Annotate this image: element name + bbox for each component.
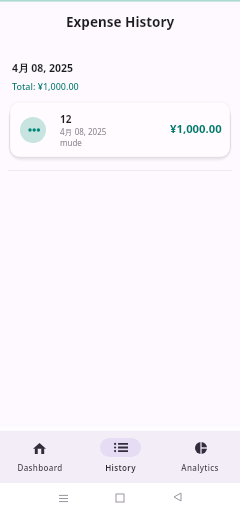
staticText: Dashboard [17,462,63,473]
staticText: Analytics [181,462,219,473]
staticText: 4月 08, 2025 [60,126,107,137]
button[interactable]: Analytics [160,431,240,483]
staticText: 12 [60,112,72,126]
staticText: History [105,462,136,473]
button[interactable]: History [80,431,160,483]
staticText: mude [60,137,82,148]
staticText: Expense History [66,13,175,31]
button[interactable]: Recents [51,486,75,510]
staticText: 4月 08, 2025 [12,61,73,75]
button[interactable]: Home [108,486,132,510]
button[interactable]: 12 [10,102,230,157]
button[interactable]: Back [165,485,189,509]
staticText: ¥1,000.00 [170,121,222,136]
button[interactable]: Dashboard [0,431,80,483]
staticText: Total: ¥1,000.00 [12,80,79,92]
